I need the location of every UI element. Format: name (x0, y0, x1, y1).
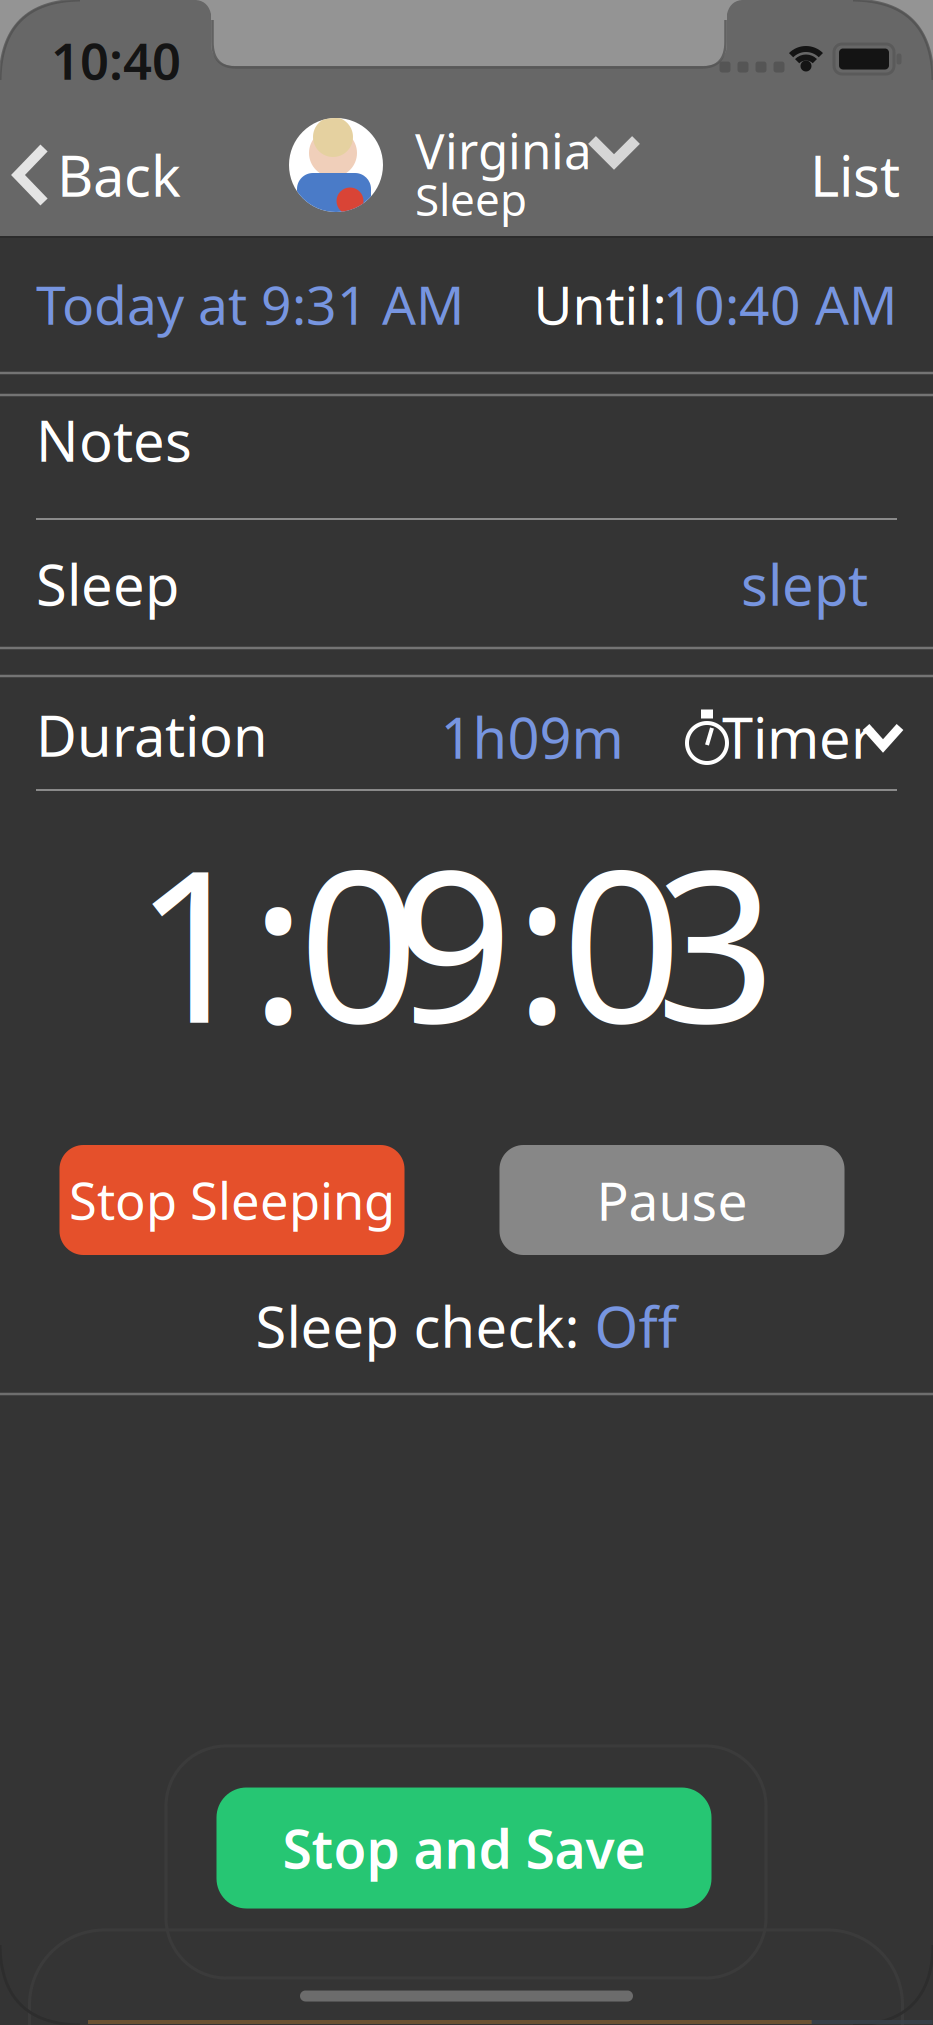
staticText: 10:40 (51, 26, 181, 94)
staticText: 1 (133, 801, 254, 1081)
button[interactable]: List (760, 140, 900, 210)
button[interactable]: Today at 9:31 AM (36, 254, 536, 354)
button[interactable]: slept (568, 524, 868, 644)
button[interactable]: Pause (499, 1145, 844, 1255)
staticText: Back (57, 138, 181, 212)
staticText: Sleep (36, 547, 179, 621)
staticText: 1h09m (440, 700, 623, 774)
button[interactable]: Timer (673, 687, 923, 787)
button[interactable]: Virginia (415, 123, 655, 177)
button[interactable]: Sleep (36, 524, 536, 644)
staticText: 9 (392, 801, 513, 1081)
staticText: Timer (722, 700, 874, 774)
staticText: Sleep check: (255, 1289, 594, 1363)
staticText: 0 (298, 801, 419, 1081)
button[interactable]: 1h09m (432, 687, 632, 787)
staticText: Duration (36, 698, 268, 772)
staticText: : (514, 801, 570, 1081)
staticText: Notes (36, 403, 192, 477)
staticText: Off (594, 1289, 677, 1363)
staticText: slept (741, 547, 868, 621)
button[interactable]: Stop and Save (216, 1787, 711, 1908)
staticText: : (250, 801, 306, 1081)
staticText: Pause (596, 1165, 747, 1235)
staticText: Today at 9:31 AM (36, 269, 464, 339)
staticText: List (810, 138, 900, 212)
button[interactable]: Sleep check: (255, 1289, 677, 1363)
button[interactable]: Stop Sleeping (59, 1145, 404, 1255)
staticText: 0 (561, 801, 682, 1081)
staticText: 3 (655, 801, 776, 1081)
button[interactable] (289, 118, 383, 212)
staticText: Stop and Save (282, 1813, 645, 1883)
button[interactable]: Notes (36, 380, 896, 500)
staticText: Stop Sleeping (69, 1166, 395, 1234)
staticText: Virginia (415, 117, 592, 183)
staticText: 10:40 AM (663, 269, 897, 339)
button[interactable]: 10:40 AM (597, 254, 897, 354)
staticText: Sleep (415, 170, 527, 228)
staticText: Until: (533, 269, 666, 339)
button[interactable]: Back (57, 140, 257, 210)
